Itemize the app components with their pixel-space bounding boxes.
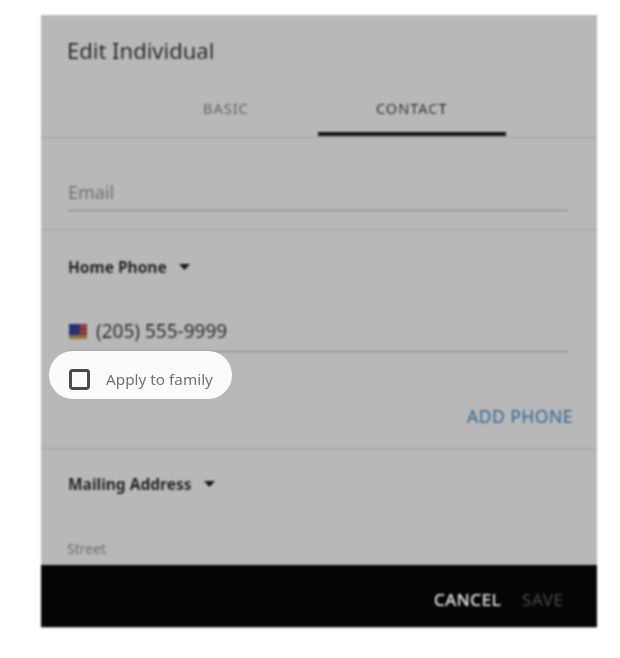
staticText: CANCEL: [434, 588, 502, 611]
staticText: Mailing Address: [68, 473, 192, 494]
staticText: Apply to family: [106, 369, 213, 390]
staticText: CONTACT: [376, 98, 448, 118]
button[interactable]: (205) 555-9999: [69, 318, 228, 344]
button[interactable]: BASIC: [133, 85, 319, 131]
button[interactable]: Home Phone: [68, 256, 190, 277]
button[interactable]: ADD PHONE: [455, 396, 585, 436]
button[interactable]: Mailing Address: [68, 473, 215, 494]
staticText: SAVE: [522, 588, 564, 611]
staticText: Edit Individual: [67, 35, 215, 65]
staticText: (205) 555-9999: [96, 318, 228, 344]
button[interactable]: CONTACT: [319, 85, 505, 131]
staticText: BASIC: [203, 98, 249, 118]
staticText: Home Phone: [68, 256, 167, 277]
staticText: ADD PHONE: [467, 404, 574, 428]
button[interactable]: Apply to family: [49, 351, 232, 399]
button[interactable]: SAVE: [510, 578, 576, 621]
staticText: Email: [68, 180, 115, 205]
staticText: Street: [67, 539, 107, 558]
button[interactable]: CANCEL: [422, 578, 514, 621]
